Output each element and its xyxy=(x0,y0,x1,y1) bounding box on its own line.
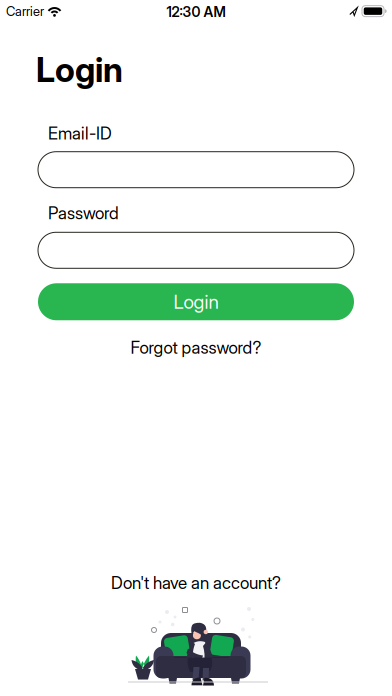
staticText: Don't have an account? xyxy=(111,572,281,593)
staticText: Carrier xyxy=(6,3,44,19)
staticText: Login xyxy=(36,49,123,90)
staticText: Password xyxy=(48,203,119,223)
staticText: 12:30 AM xyxy=(166,3,225,20)
button[interactable]: Don't have an account? xyxy=(0,572,392,593)
staticText: Login xyxy=(173,290,218,313)
staticText: Forgot password? xyxy=(130,337,261,358)
button[interactable] xyxy=(0,152,392,188)
staticText: Email-ID xyxy=(48,123,112,144)
button[interactable]: Forgot password? xyxy=(0,337,392,358)
button[interactable] xyxy=(0,232,392,268)
button[interactable]: Login xyxy=(0,283,392,320)
